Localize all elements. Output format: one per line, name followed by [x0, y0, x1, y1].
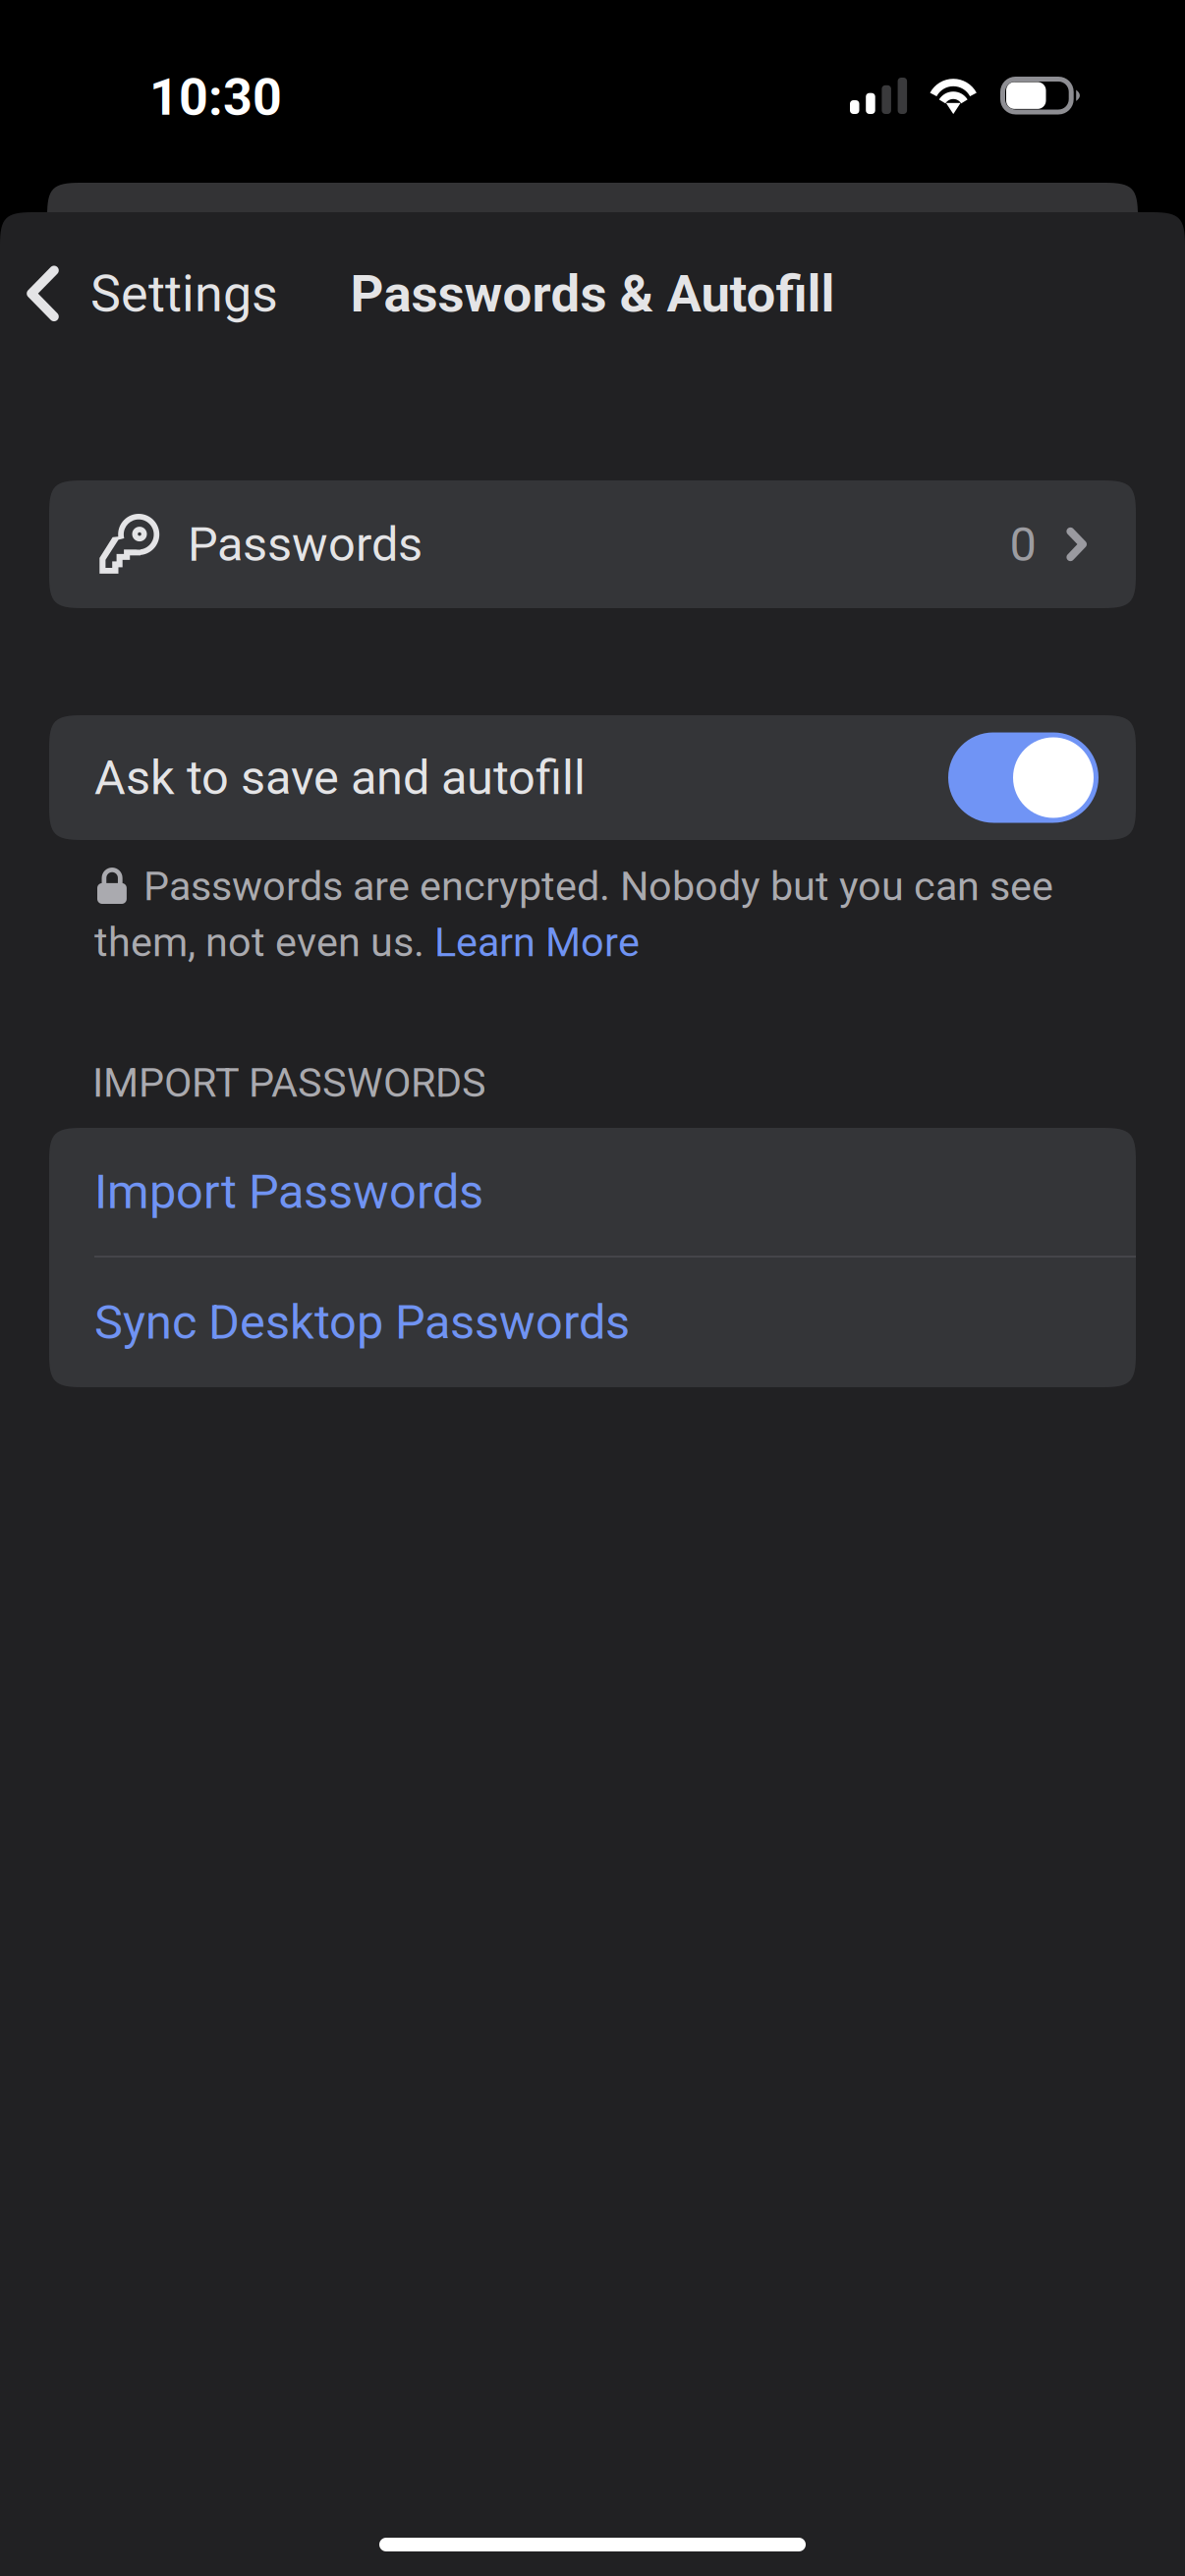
staticText: Ask to save and autofill [94, 750, 586, 806]
button[interactable]: Settings [0, 250, 354, 338]
button[interactable]: Import Passwords [49, 1128, 1136, 1256]
button[interactable]: Ask to save and autofill [948, 732, 1099, 823]
staticText: Sync Desktop Passwords [94, 1294, 630, 1350]
staticText: them, not even us. [94, 918, 434, 966]
staticText: Passwords & Autofill [350, 263, 835, 324]
staticText: Passwords [188, 516, 423, 572]
staticText: Settings [90, 264, 278, 324]
staticText: Learn More [434, 918, 640, 966]
staticText: Import Passwords [94, 1164, 483, 1220]
button[interactable]: Learn More [434, 918, 640, 966]
staticText: 0 [1010, 516, 1036, 572]
staticText: 10:30 [149, 67, 282, 127]
button[interactable]: Passwords [49, 480, 1136, 608]
staticText: IMPORT PASSWORDS [92, 1059, 486, 1107]
button[interactable]: Sync Desktop Passwords [49, 1257, 1136, 1387]
staticText: Passwords are encrypted. Nobody but you … [143, 863, 1053, 910]
